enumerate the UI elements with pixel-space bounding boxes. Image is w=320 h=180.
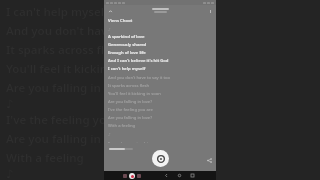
button[interactable]: It sparks across flesh (108, 83, 212, 89)
button[interactable]: A sparkind of love (108, 34, 212, 40)
button[interactable]: Home (176, 172, 183, 179)
button[interactable]: Stop recording (123, 174, 127, 178)
button[interactable]: More options (206, 7, 214, 15)
button[interactable]: I can't help myself (108, 66, 212, 72)
button[interactable]: So you're running late (108, 141, 212, 143)
staticText: Generously shared (108, 42, 147, 48)
staticText: ♪ (108, 27, 111, 32)
staticText: And you don't have t (6, 23, 122, 39)
staticText: Are you falling in love (6, 80, 127, 96)
staticText: It sparks across flesh (6, 42, 124, 58)
button[interactable]: Are you falling in love? (108, 115, 212, 121)
staticText: Are you falling in love? (108, 99, 152, 105)
button[interactable] (109, 148, 133, 150)
staticText: I've the feeling you are (108, 107, 153, 113)
staticText: You'll feel it kicking in (6, 61, 128, 77)
button[interactable]: And you don't have to say it too (108, 75, 212, 81)
staticText: I can't help myself (6, 4, 109, 20)
staticText: Viens Choot (108, 18, 133, 24)
staticText: And you don't have to say it too (108, 75, 170, 81)
button[interactable]: Recent apps (189, 172, 196, 179)
staticText: So you're running late (108, 141, 152, 143)
button[interactable]: Record (129, 173, 135, 179)
button[interactable]: And I can't believe it's hit God (108, 58, 212, 64)
staticText: It sparks across flesh (108, 83, 150, 89)
staticText: Are you falling in love? (108, 115, 152, 121)
staticText: And I can't believe it's hit God (108, 58, 169, 64)
staticText: Enough of love life (108, 50, 146, 56)
button[interactable]: I've the feeling you are (108, 107, 212, 113)
staticText: I can't help myself (108, 66, 146, 72)
button[interactable]: Play (152, 150, 169, 167)
staticText: With a feeling (108, 123, 136, 129)
button[interactable]: With a feeling (108, 123, 212, 129)
button[interactable]: You'll feel it kicking in soon (108, 91, 212, 97)
button[interactable]: Are you falling in love? (108, 99, 212, 105)
staticText: You'll feel it kicking in soon (108, 91, 161, 97)
button[interactable]: Share (205, 156, 213, 164)
button[interactable]: Viens Choot (108, 18, 212, 24)
staticText: A sparkind of love (108, 34, 145, 40)
button[interactable]: Collapse (106, 7, 114, 15)
staticText: ♪ (108, 132, 111, 137)
staticText: Are you falling in love (6, 131, 127, 147)
button[interactable]: Back (163, 172, 170, 179)
button[interactable]: Generously shared (108, 42, 212, 48)
staticText: I've the feeling you a (6, 112, 124, 128)
button[interactable]: Pause recording (137, 174, 141, 178)
button[interactable]: Enough of love life (108, 50, 212, 56)
